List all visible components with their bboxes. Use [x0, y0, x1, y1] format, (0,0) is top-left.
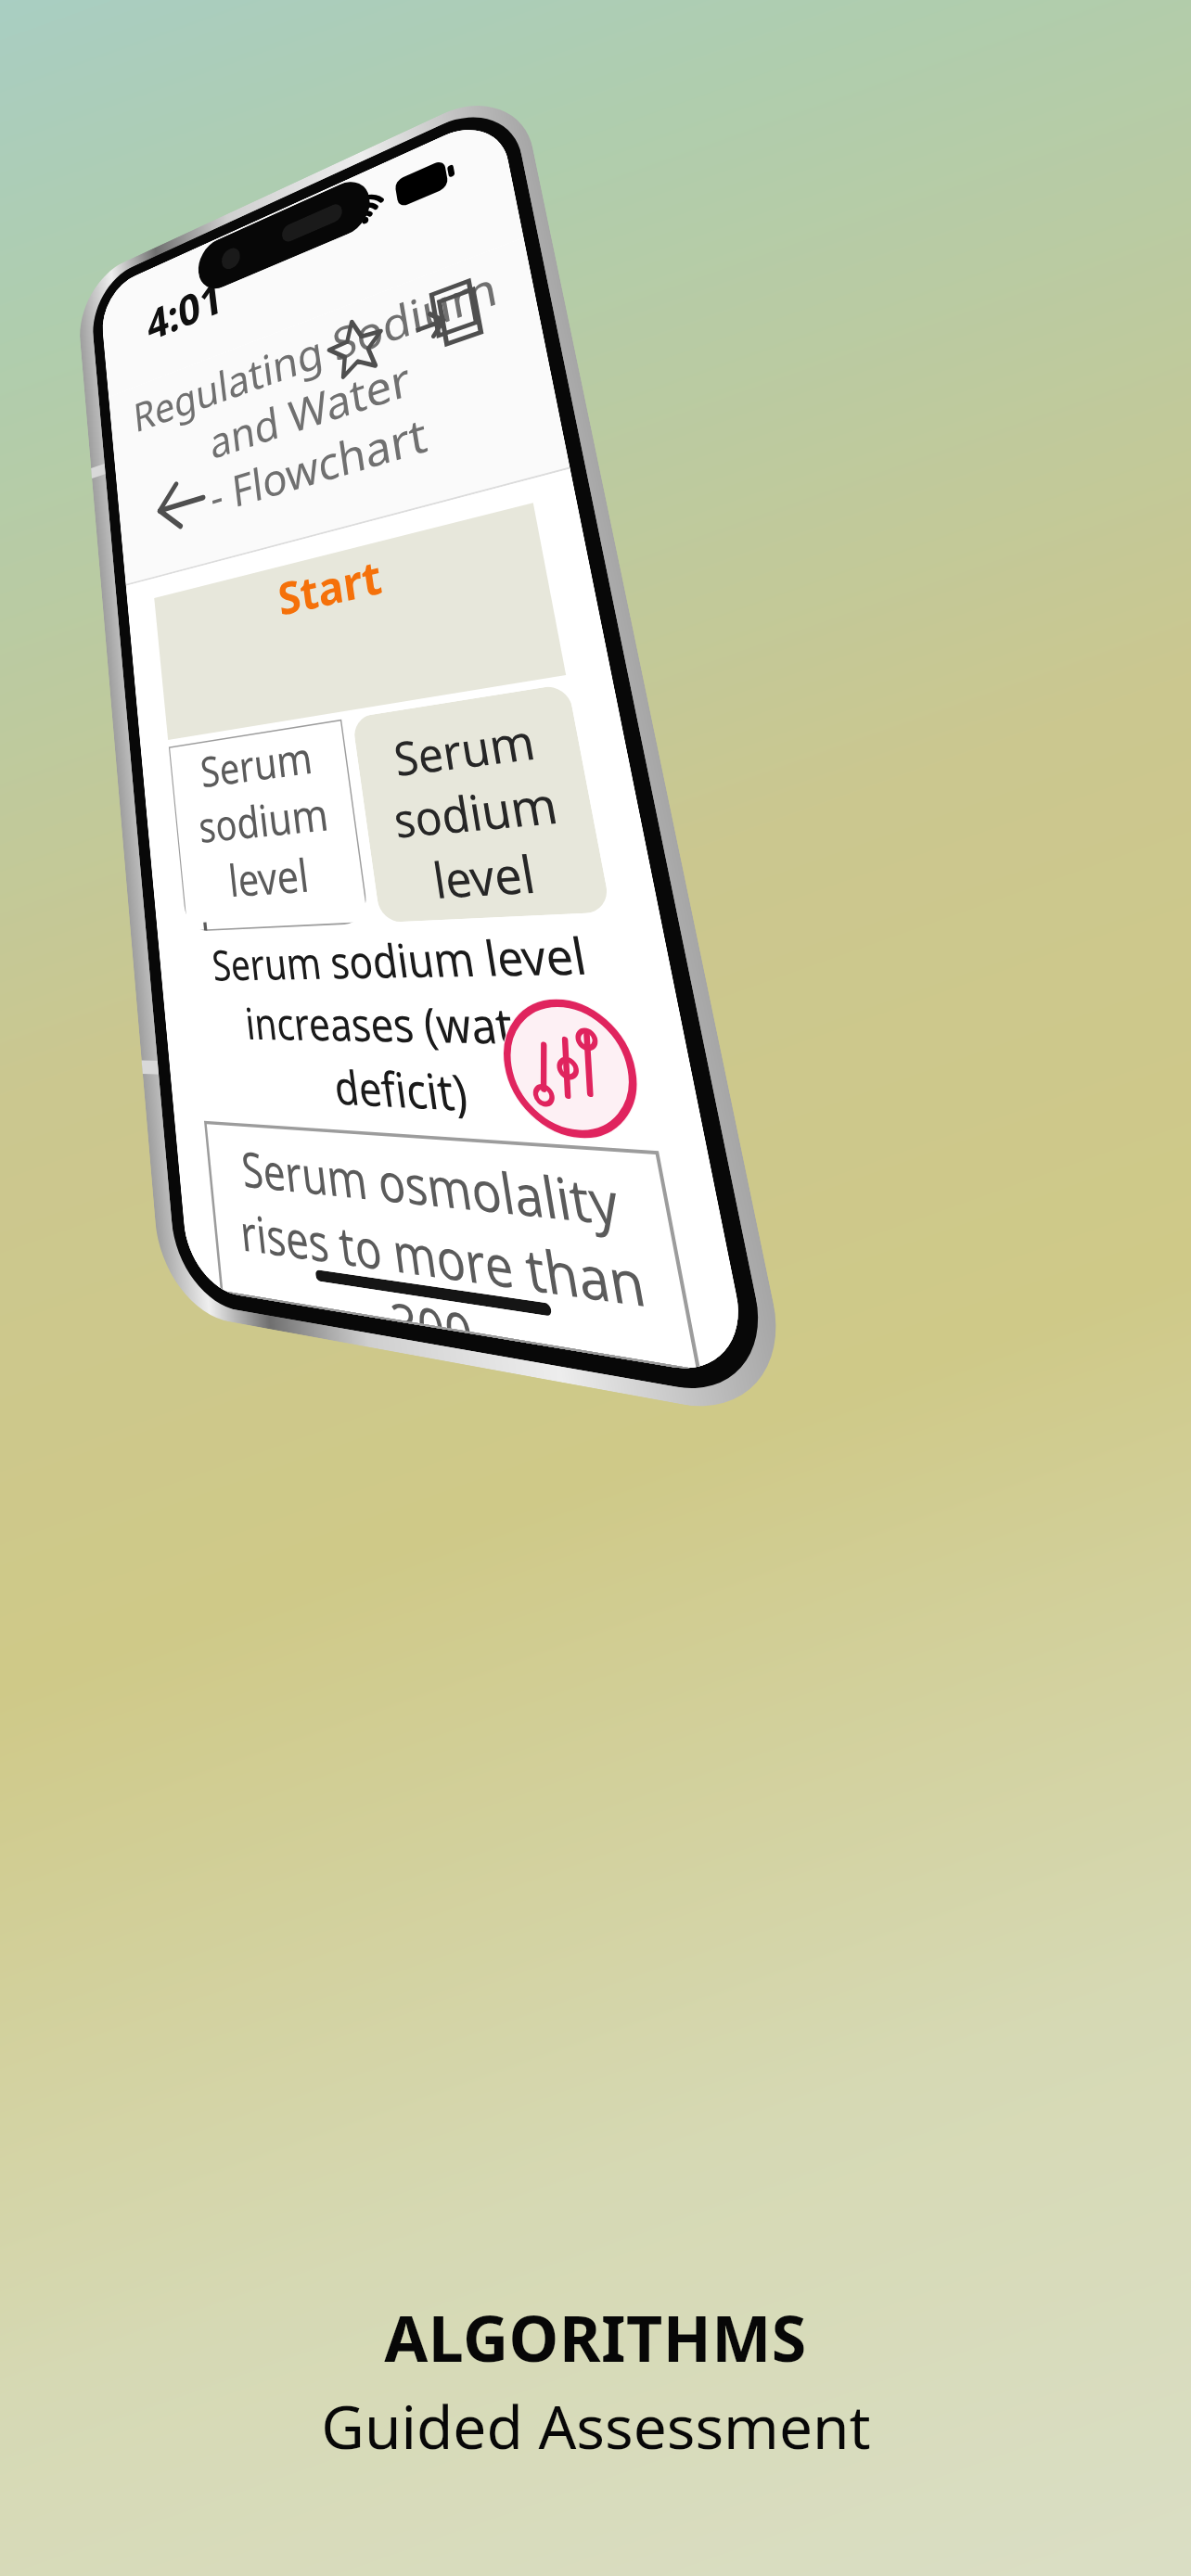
button[interactable]: Adjust settings [493, 998, 650, 1143]
staticText: 4:01 [145, 266, 225, 353]
button[interactable]: Serum sodium level increases [352, 684, 611, 923]
button[interactable]: Export [393, 254, 503, 378]
staticText: Serum osmolality rises to more than 300 … [221, 1134, 675, 1368]
staticText: Serum sodium level decreases [169, 721, 370, 932]
staticText: Serum sodium level increases [354, 701, 611, 923]
button[interactable]: Back [139, 449, 224, 559]
staticText: Guided Assessment [321, 2386, 871, 2467]
button[interactable]: Start [154, 503, 566, 740]
button[interactable]: Serum osmolality rises to more than 300 … [205, 1122, 699, 1371]
staticText: Serum sodium level increases (water defi… [187, 919, 654, 1137]
staticText: Start [275, 544, 386, 629]
button[interactable]: Serum sodium level decreases [169, 719, 370, 932]
staticText: Regulating Sodium and Water - Flowchart [109, 241, 562, 552]
button[interactable]: Favorite [308, 290, 407, 407]
staticText: ALGORITHMS [384, 2294, 807, 2380]
